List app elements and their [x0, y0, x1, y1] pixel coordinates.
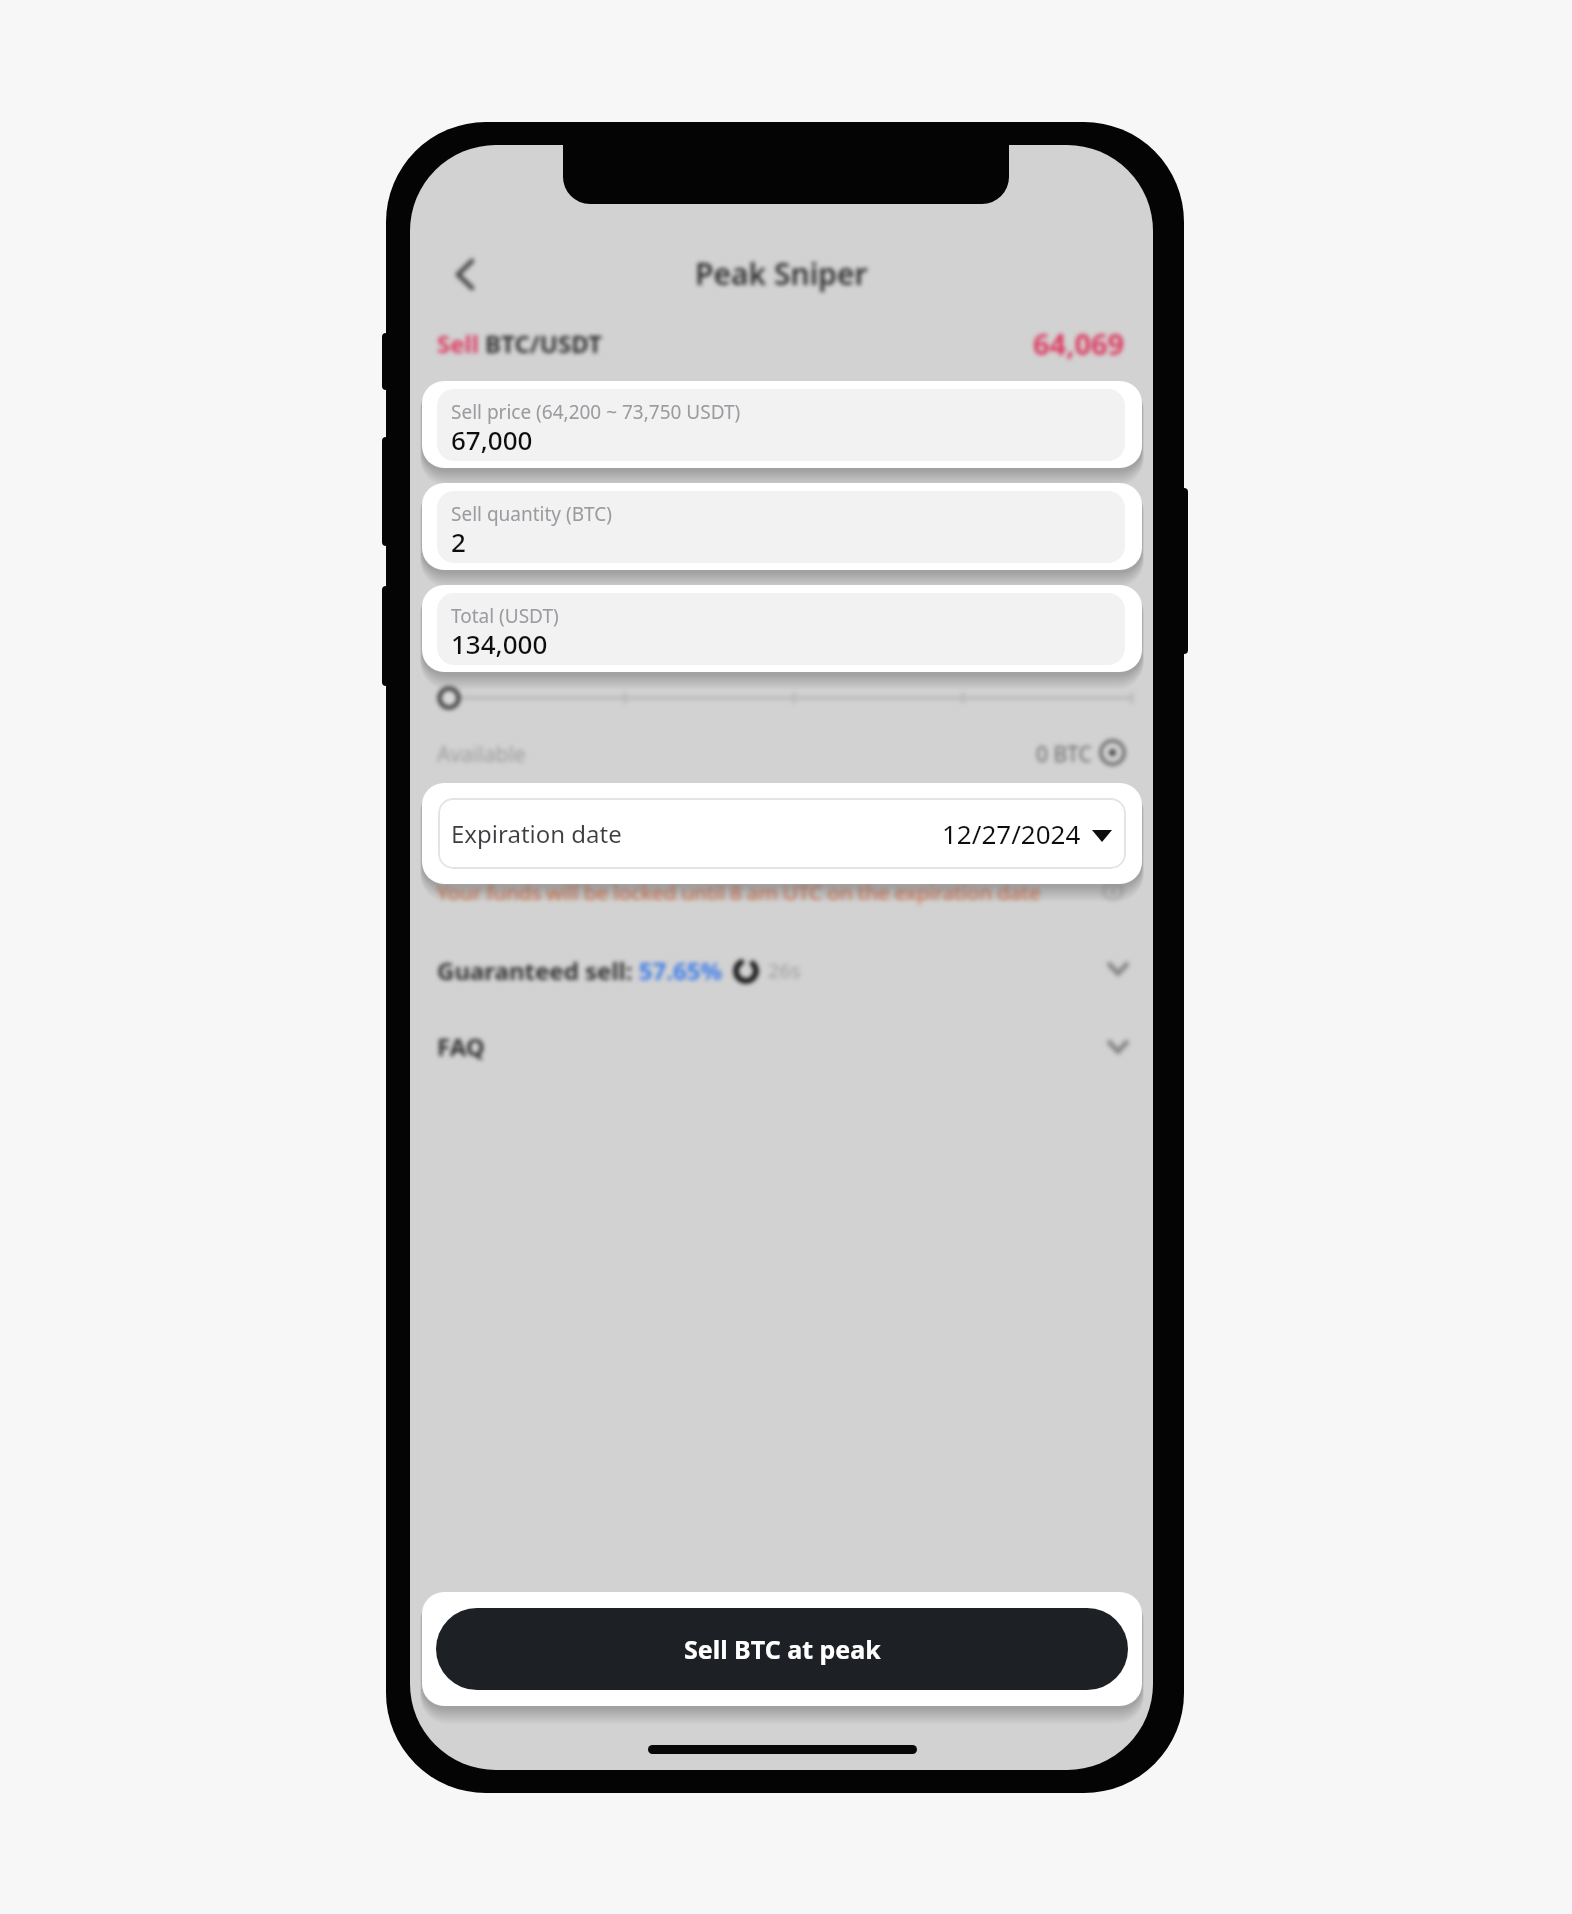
button[interactable]: Sell BTC at peak	[436, 1608, 1128, 1690]
staticText: Total (USDT)	[451, 603, 559, 629]
button[interactable]: Back	[454, 257, 494, 299]
staticText: Sell BTC at peak	[684, 1632, 881, 1666]
button[interactable]: Expiration date	[438, 798, 1126, 869]
staticText: 134,000	[451, 626, 548, 661]
button[interactable]: Sell price (64,200 ~ 73,750 USDT)	[437, 389, 1125, 461]
staticText: Available	[437, 740, 526, 769]
staticText: Expiration date	[451, 817, 622, 850]
staticText: Your funds will be locked until 8 am UTC…	[437, 878, 1041, 906]
staticText: Guaranteed sell: 57.65%	[437, 954, 723, 987]
staticText: 67,000	[451, 422, 533, 457]
button[interactable]: Max available	[1099, 739, 1126, 766]
staticText: FAQ	[437, 1030, 485, 1063]
button[interactable]: Guaranteed sell: 57.65%	[430, 943, 1135, 995]
staticText: 0 BTC	[1036, 740, 1092, 769]
button[interactable]: More info	[1103, 881, 1123, 901]
staticText: 2	[451, 524, 466, 559]
button[interactable]: FAQ	[430, 1019, 1135, 1071]
staticText: 26s	[768, 957, 801, 984]
button[interactable]: Sell quantity (BTC)	[437, 491, 1125, 563]
staticText: Peak Sniper	[695, 253, 868, 294]
staticText: Sell BTC/USDT	[437, 327, 602, 360]
staticText: Sell quantity (BTC)	[451, 501, 612, 527]
staticText: 12/27/2024	[942, 816, 1081, 851]
button[interactable]: Total (USDT)	[437, 593, 1125, 665]
staticText: Sell price (64,200 ~ 73,750 USDT)	[451, 399, 741, 425]
staticText: 64,069	[1033, 324, 1125, 363]
